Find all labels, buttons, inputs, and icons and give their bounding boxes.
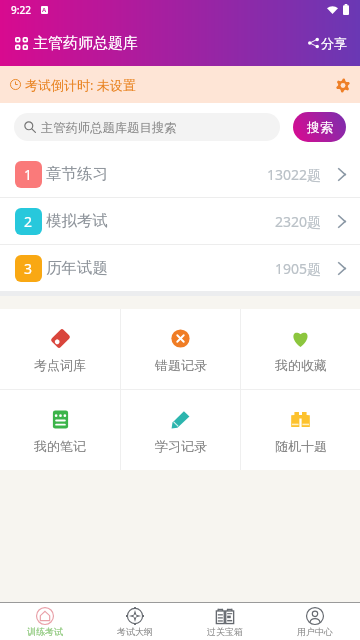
button[interactable]: 随机十题	[241, 390, 360, 470]
staticText: 我的笔记	[34, 438, 86, 454]
staticText: 2320题	[275, 212, 322, 231]
staticText: 训练考试	[27, 626, 63, 637]
staticText: 章节练习	[46, 164, 108, 184]
button[interactable]: 训练考试	[0, 603, 90, 640]
button[interactable]: 3	[0, 245, 360, 291]
button[interactable]: 考试大纲	[90, 603, 180, 640]
button[interactable]: 搜索	[293, 112, 346, 142]
staticText: 1905题	[275, 259, 322, 278]
staticText: 分享	[321, 35, 347, 51]
staticText: 2	[24, 212, 33, 231]
staticText: 9:22	[11, 3, 31, 17]
staticText: 主管药师总题库题目搜索	[41, 120, 177, 135]
staticText: 过关宝箱	[207, 626, 243, 637]
button[interactable]: 主管药师总题库题目搜索	[14, 113, 280, 141]
button[interactable]: 过关宝箱	[180, 603, 270, 640]
staticText: 我的收藏	[275, 357, 327, 373]
button[interactable]: 考点词库	[0, 309, 120, 389]
button[interactable]: 我的笔记	[0, 390, 120, 470]
staticText: A	[42, 6, 47, 14]
staticText: 1	[24, 165, 33, 184]
button[interactable]: 错题记录	[121, 309, 240, 389]
button[interactable]: 我的收藏	[241, 309, 360, 389]
staticText: 随机十题	[275, 438, 327, 454]
staticText: 13022题	[267, 165, 322, 184]
staticText: 模拟考试	[46, 211, 108, 231]
staticText: 主管药师总题库	[33, 34, 138, 53]
button[interactable]: 分享	[307, 31, 348, 55]
staticText: 搜索	[307, 119, 333, 135]
staticText: 考试倒计时: 未设置	[25, 76, 136, 94]
button[interactable]: 用户中心	[270, 603, 360, 640]
staticText: 3	[24, 259, 33, 278]
staticText: 学习记录	[155, 438, 207, 454]
staticText: 考试大纲	[117, 626, 153, 637]
button[interactable]: 学习记录	[121, 390, 240, 470]
staticText: 历年试题	[46, 258, 108, 278]
staticText: 用户中心	[297, 626, 333, 637]
button[interactable]: 1	[0, 151, 360, 197]
button[interactable]: Settings	[332, 74, 354, 96]
staticText: 考点词库	[34, 357, 86, 373]
button[interactable]: 2	[0, 198, 360, 244]
staticText: 错题记录	[155, 357, 207, 373]
